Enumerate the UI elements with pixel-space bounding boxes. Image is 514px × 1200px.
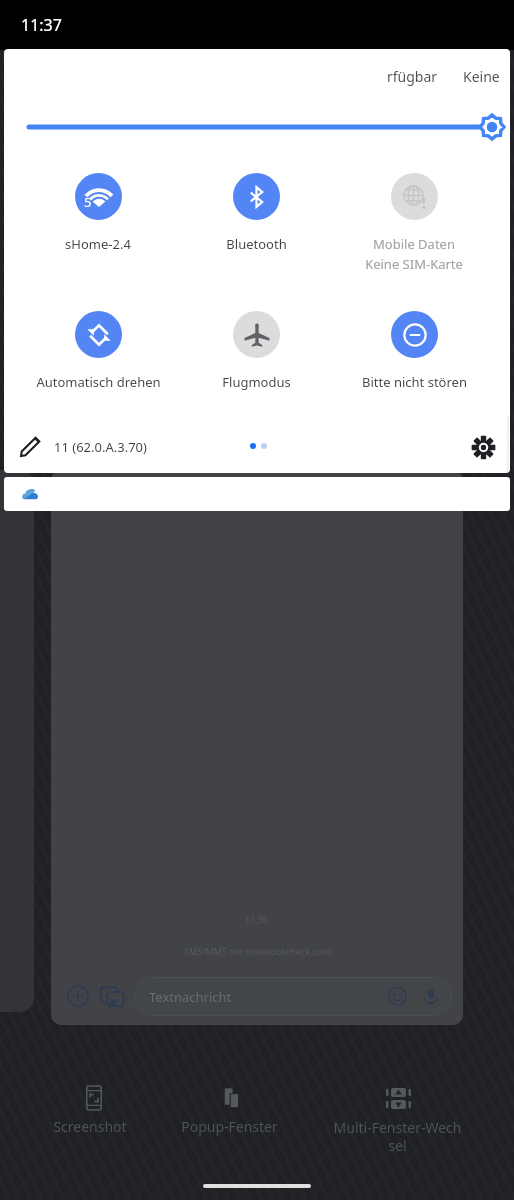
button[interactable]: Mobile Daten (335, 173, 493, 273)
button[interactable]: Screenshot (50, 1086, 130, 1136)
button[interactable]: Flugmodus (177, 311, 335, 391)
staticText: Bitte nicht stören (362, 373, 467, 391)
staticText: 11 (62.0.A.3.70) (54, 438, 147, 456)
button[interactable]: Bearbeiten (20, 436, 147, 457)
staticText: Mobile Daten (373, 235, 455, 253)
button[interactable]: 5 (19, 173, 177, 253)
button[interactable]: Einstellungen (469, 433, 497, 461)
staticText: rfügbar (387, 67, 438, 86)
button[interactable]: Automatisch drehen (19, 311, 177, 391)
button[interactable]: Popup-Fenster (179, 1086, 280, 1136)
staticText: 11:37 (21, 14, 62, 36)
staticText: Screenshot (50, 1117, 130, 1136)
staticText: 5 (84, 193, 92, 211)
other: Bearbeiten (20, 436, 41, 457)
staticText: Popup-Fenster (179, 1117, 280, 1136)
button[interactable]: Hinzufügen (67, 985, 89, 1007)
staticText: Automatisch drehen (36, 373, 161, 391)
staticText: 11:36 (245, 913, 269, 925)
button[interactable]: Textnachricht (134, 977, 452, 1016)
staticText: SMS/MMS mit notebookcheck.com (184, 945, 331, 957)
button[interactable]: Bitte nicht stören (335, 311, 493, 391)
staticText: Bluetooth (226, 235, 287, 253)
staticText: Flugmodus (222, 373, 291, 391)
staticText: Keine (463, 67, 500, 86)
staticText: Keine SIM-Karte (365, 255, 463, 273)
button[interactable]: Helligkeit (4, 107, 510, 147)
staticText: Textnachricht (149, 988, 232, 1006)
button[interactable]: Multi-Fenster-Wech sel (330, 1086, 465, 1155)
button[interactable]: 11:36 (51, 470, 463, 1025)
staticText: sHome-2.4 (65, 235, 131, 253)
button[interactable]: Bluetooth (177, 173, 335, 253)
staticText: Multi-Fenster-Wech sel (330, 1118, 465, 1155)
button[interactable] (4, 477, 510, 511)
button[interactable]: Galerie (101, 985, 124, 1008)
